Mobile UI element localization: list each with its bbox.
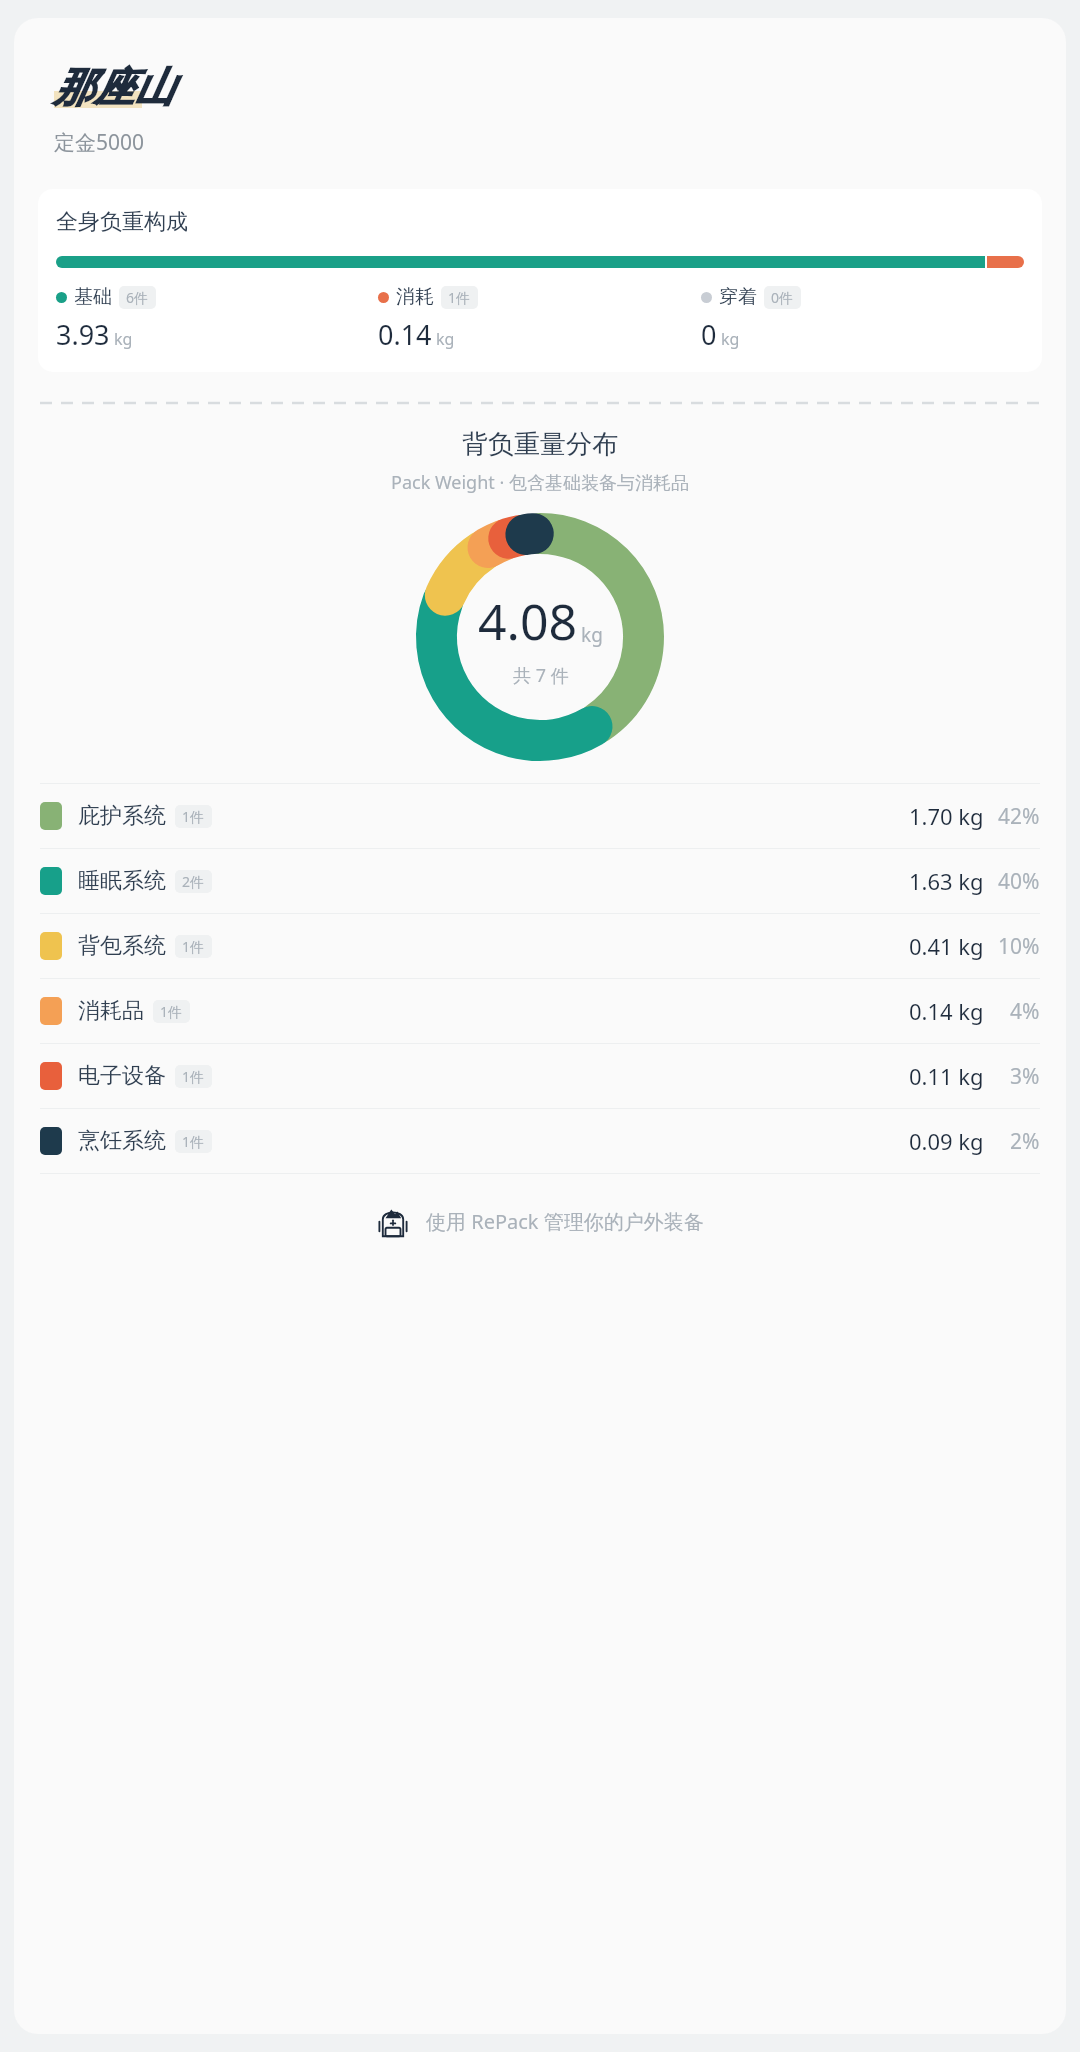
button[interactable]: 庇护系统 [40,784,1040,848]
staticText: 1.70 kg [909,801,984,831]
staticText: 庇护系统 [78,802,166,830]
staticText: 全身负重构成 [56,208,188,236]
staticText: 0.09 kg [909,1126,984,1156]
staticText: 使用 RePack 管理你的户外装备 [426,1208,704,1235]
staticText: 2件 [182,872,205,891]
button[interactable]: 睡眠系统 [40,849,1040,913]
staticText: kg [436,328,455,350]
button[interactable]: 消耗 [378,285,701,353]
staticText: 1件 [182,937,205,956]
staticText: 0.14 kg [909,996,984,1026]
staticText: 6件 [126,288,149,307]
staticText: 穿着 [719,285,757,309]
button[interactable]: 烹饪系统 [40,1109,1040,1173]
staticText: 0.11 kg [909,1061,984,1091]
staticText: 消耗 [396,285,434,309]
button[interactable]: RePack backpack [14,1204,1066,1238]
staticText: 1件 [448,288,471,307]
staticText: Pack Weight · 包含基础装备与消耗品 [14,470,1066,495]
staticText: 1件 [182,1132,205,1151]
button[interactable]: 那座山 [54,62,174,112]
button[interactable]: 基础 [56,285,378,353]
staticText: 烹饪系统 [78,1127,166,1155]
button[interactable]: 消耗品 [40,979,1040,1043]
staticText: 0件 [771,288,794,307]
staticText: 睡眠系统 [78,867,166,895]
staticText: 1件 [160,1002,183,1021]
staticText: 1件 [182,1067,205,1086]
button[interactable]: 穿着 [701,285,1024,353]
staticText: 背包系统 [78,932,166,960]
staticText: kg [721,328,740,350]
staticText: kg [114,328,133,350]
staticText: 1.63 kg [909,866,984,896]
staticText: 背负重量分布 [14,428,1066,461]
button[interactable]: 背包系统 [40,914,1040,978]
staticText: 共 7 件 [513,663,569,688]
staticText: 消耗品 [78,997,144,1025]
other: RePack backpack [376,1204,410,1238]
staticText: 0.41 kg [909,931,984,961]
staticText: 10% [998,932,1040,961]
staticText: 40% [998,867,1040,896]
staticText: 0 [701,316,717,353]
staticText: 基础 [74,285,112,309]
staticText: 2% [1010,1127,1040,1156]
staticText: 定金5000 [54,128,145,157]
staticText: 1件 [182,807,205,826]
staticText: kg [581,622,603,648]
staticText: 4% [1010,997,1040,1026]
staticText: 4.08 [478,587,578,655]
staticText: 42% [998,802,1040,831]
staticText: 电子设备 [78,1062,166,1090]
staticText: 那座山 [54,62,174,112]
staticText: 3% [1010,1062,1040,1091]
button[interactable]: 电子设备 [40,1044,1040,1108]
staticText: 0.14 [378,316,432,353]
staticText: 3.93 [56,316,110,353]
